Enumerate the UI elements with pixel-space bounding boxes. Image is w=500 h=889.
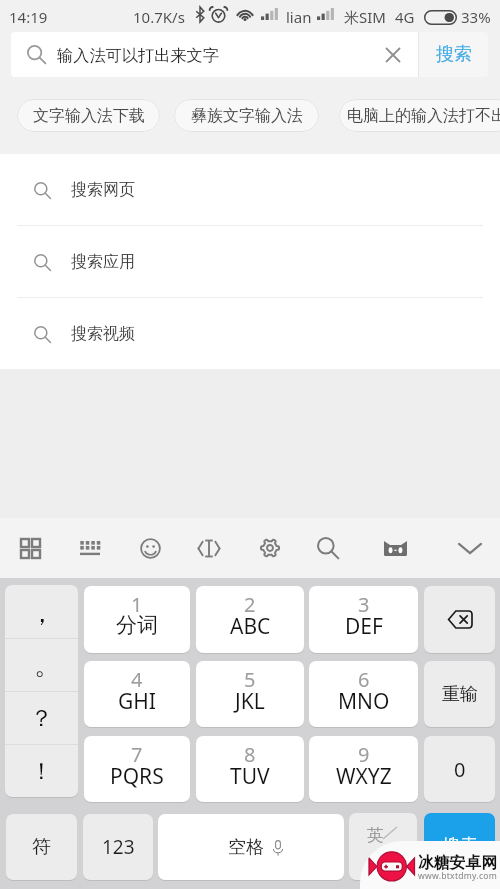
- staticText: 8: [244, 741, 256, 768]
- button[interactable]: Voice input: [369, 524, 421, 572]
- staticText: 空格: [228, 836, 264, 859]
- staticText: 0: [454, 756, 466, 783]
- staticText: 3: [358, 591, 370, 618]
- button[interactable]: 7: [84, 736, 190, 802]
- staticText: 搜索视频: [71, 324, 135, 344]
- button[interactable]: 符: [6, 814, 77, 880]
- button[interactable]: 搜索: [419, 32, 488, 77]
- button[interactable]: Search: [302, 524, 354, 572]
- button[interactable]: ，: [5, 585, 78, 638]
- button[interactable]: 彝族文字输入法: [174, 99, 319, 132]
- button[interactable]: 搜索视频: [0, 298, 500, 370]
- staticText: lian: [286, 7, 312, 27]
- button[interactable]: 搜索: [424, 813, 495, 880]
- button[interactable]: 8: [196, 736, 304, 802]
- button[interactable]: 3: [309, 586, 418, 653]
- button[interactable]: 1: [84, 586, 190, 653]
- staticText: 14:19: [9, 7, 48, 27]
- staticText: PQRS: [110, 762, 164, 791]
- staticText: 33%: [461, 7, 491, 27]
- staticText: 搜索网页: [71, 180, 135, 200]
- button[interactable]: 英: [349, 813, 417, 880]
- button[interactable]: 空格: [158, 814, 344, 880]
- staticText: 输入法可以打出来文字: [57, 45, 368, 65]
- button[interactable]: 搜索应用: [0, 226, 500, 298]
- button[interactable]: 输入法可以打出来文字: [11, 32, 418, 77]
- staticText: 5: [244, 666, 256, 693]
- staticText: 搜索: [442, 835, 478, 858]
- staticText: WXYZ: [336, 762, 392, 791]
- staticText: 搜索应用: [71, 252, 135, 272]
- staticText: 冰糖安卓网: [418, 853, 497, 873]
- staticText: MNO: [338, 687, 390, 716]
- staticText: 4G: [395, 7, 415, 27]
- button[interactable]: 文字输入法下载: [17, 99, 160, 132]
- staticText: ？: [30, 704, 53, 733]
- staticText: GHI: [118, 687, 156, 716]
- staticText: 6: [358, 666, 370, 693]
- staticText: ！: [30, 757, 53, 786]
- button[interactable]: Layouts: [4, 524, 56, 572]
- staticText: 7: [131, 741, 143, 768]
- button[interactable]: Clear: [368, 32, 418, 77]
- staticText: 123: [102, 834, 135, 860]
- staticText: 1: [131, 591, 143, 618]
- staticText: ABC: [230, 612, 271, 641]
- button[interactable]: Settings: [244, 524, 296, 572]
- button[interactable]: 0: [424, 736, 495, 802]
- button[interactable]: Move cursor: [183, 524, 235, 572]
- button[interactable]: 9: [309, 736, 418, 802]
- staticText: JKL: [235, 687, 265, 716]
- button[interactable]: 电脑上的输入法打不出: [339, 99, 500, 132]
- staticText: 彝族文字输入法: [191, 106, 303, 126]
- staticText: ，: [29, 597, 55, 630]
- button[interactable]: Backspace: [424, 586, 495, 653]
- button[interactable]: 搜索网页: [0, 154, 500, 226]
- button[interactable]: Emoji: [124, 524, 176, 572]
- button[interactable]: 5: [196, 661, 304, 727]
- button[interactable]: 2: [196, 586, 304, 653]
- staticText: 。: [34, 649, 60, 682]
- staticText: www.btxtdmy.com: [418, 870, 498, 882]
- button[interactable]: 123: [83, 814, 153, 880]
- staticText: 分词: [116, 612, 158, 638]
- staticText: DEF: [345, 612, 383, 641]
- staticText: 9: [358, 741, 370, 768]
- staticText: 10.7K/s: [133, 7, 185, 27]
- staticText: 搜索: [436, 43, 472, 66]
- staticText: 电脑上的输入法打不出: [347, 106, 500, 126]
- button[interactable]: 6: [309, 661, 418, 727]
- staticText: 4: [131, 666, 143, 693]
- button[interactable]: ？: [5, 692, 78, 744]
- button[interactable]: Hide keyboard: [444, 524, 496, 572]
- button[interactable]: 重输: [424, 661, 495, 727]
- button[interactable]: 。: [5, 639, 78, 691]
- staticText: 米SIM: [344, 7, 386, 27]
- staticText: 文字输入法下载: [33, 106, 145, 126]
- staticText: TUV: [230, 762, 270, 791]
- button[interactable]: 4: [84, 661, 190, 727]
- staticText: 符: [32, 835, 51, 859]
- staticText: 重输: [442, 683, 478, 706]
- staticText: 2: [244, 591, 256, 618]
- button[interactable]: Keyboard: [64, 524, 116, 572]
- staticText: 英: [367, 825, 384, 846]
- button[interactable]: ！: [5, 745, 78, 797]
